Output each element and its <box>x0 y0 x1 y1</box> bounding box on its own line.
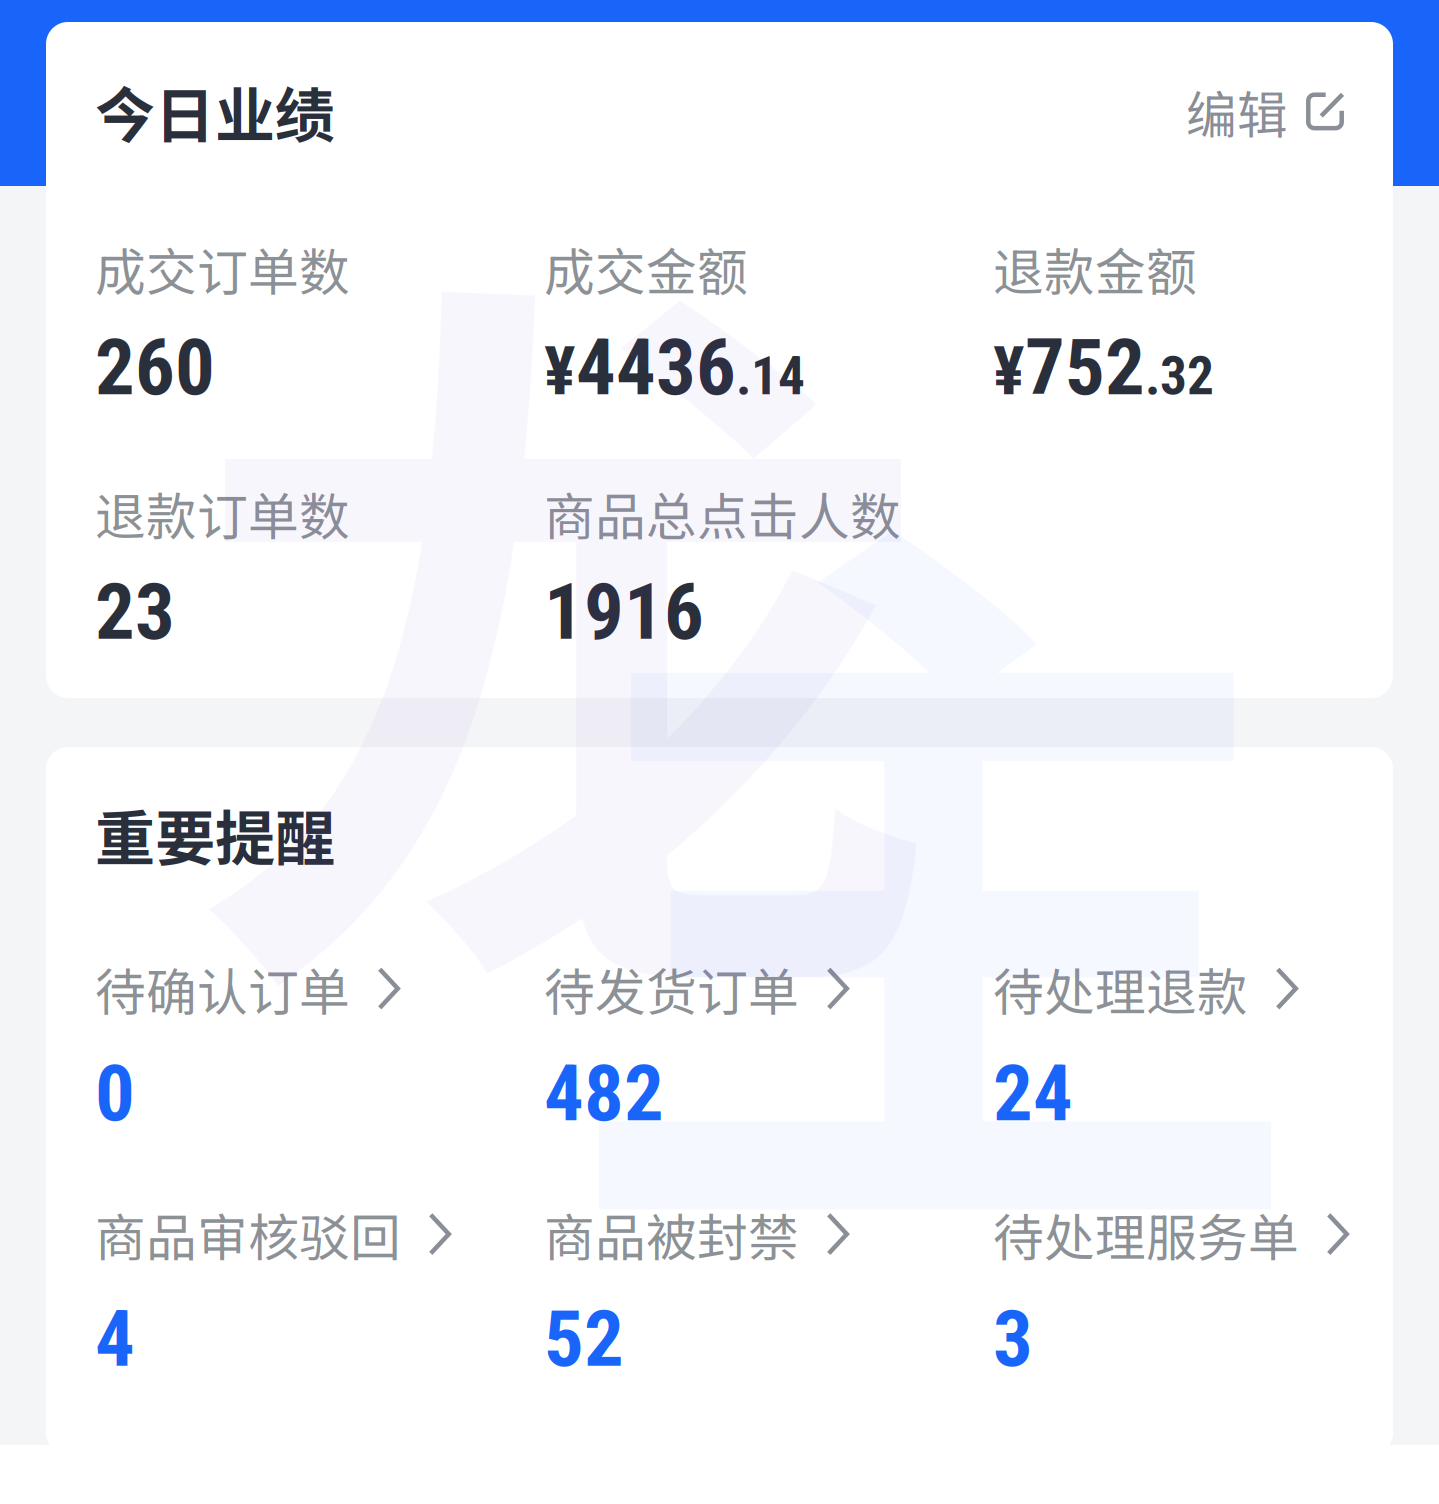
staticText: .14 <box>736 345 805 407</box>
staticText: 编辑 <box>1186 75 1288 148</box>
staticText: .32 <box>1145 345 1214 407</box>
staticText: 龙 <box>190 60 937 1141</box>
staticText: 482 <box>544 1047 664 1139</box>
staticText: 1916 <box>544 566 704 658</box>
staticText: 主 <box>560 300 1307 1381</box>
staticText: 退款订单数 <box>95 476 350 550</box>
button[interactable]: 待处理退款 <box>944 952 1393 1139</box>
button[interactable]: 待确认订单 <box>46 952 495 1139</box>
staticText: 4 <box>95 1293 135 1385</box>
button[interactable]: 待发货订单 <box>495 952 944 1139</box>
staticText: 退款金额 <box>993 232 1197 305</box>
staticText: 752 <box>1025 321 1145 413</box>
staticText: 待确认订单 <box>95 952 350 1025</box>
button[interactable]: 商品被封禁 <box>495 1197 944 1385</box>
button[interactable]: 待处理服务单 <box>944 1197 1393 1385</box>
staticText: 3 <box>993 1293 1033 1385</box>
staticText: 52 <box>544 1293 624 1385</box>
staticText: 今日业绩 <box>95 68 335 155</box>
staticText: 商品总点击人数 <box>544 476 901 550</box>
staticText: 4436 <box>576 321 736 413</box>
staticText: 待处理退款 <box>993 952 1248 1025</box>
staticText: ¥ <box>544 332 576 410</box>
staticText: 重要提醒 <box>95 791 335 878</box>
staticText: 待发货订单 <box>544 952 799 1025</box>
staticText: ¥ <box>993 332 1025 410</box>
staticText: 260 <box>95 321 215 413</box>
button[interactable]: 编辑 <box>1186 75 1344 148</box>
button[interactable]: 商品审核驳回 <box>46 1197 495 1385</box>
staticText: 商品审核驳回 <box>95 1197 401 1271</box>
staticText: 23 <box>95 566 175 658</box>
staticText: 成交订单数 <box>95 232 350 305</box>
staticText: 成交金额 <box>544 232 748 305</box>
staticText: 24 <box>993 1047 1073 1139</box>
staticText: 待处理服务单 <box>993 1197 1299 1271</box>
staticText: 商品被封禁 <box>544 1197 799 1271</box>
staticText: 0 <box>95 1047 135 1139</box>
